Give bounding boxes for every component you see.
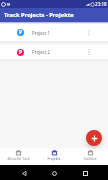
staticText: Projekte — [47, 156, 61, 161]
staticText: P — [19, 29, 23, 36]
staticText: Aktueller Task — [7, 156, 30, 161]
button[interactable]: Add project — [86, 130, 102, 146]
button[interactable]: Projekte — [36, 148, 72, 165]
button[interactable]: Back — [17, 166, 31, 180]
button[interactable]: More options — [83, 45, 95, 59]
button[interactable]: P — [0, 45, 108, 59]
staticText: P — [19, 49, 23, 56]
staticText: Project 2 — [32, 49, 50, 55]
staticText: Taskliste — [83, 156, 97, 161]
staticText: Track Projects - Projekte — [4, 11, 74, 19]
button[interactable]: Taskliste — [72, 148, 108, 165]
button[interactable]: P — [0, 24, 108, 41]
button[interactable]: More options — [83, 24, 95, 41]
staticText: 23:18 — [95, 1, 107, 7]
button[interactable]: Recents — [78, 166, 92, 180]
button[interactable]: Home — [47, 166, 61, 180]
staticText: Project 1 — [32, 30, 50, 36]
button[interactable]: Aktueller Task — [0, 148, 36, 165]
